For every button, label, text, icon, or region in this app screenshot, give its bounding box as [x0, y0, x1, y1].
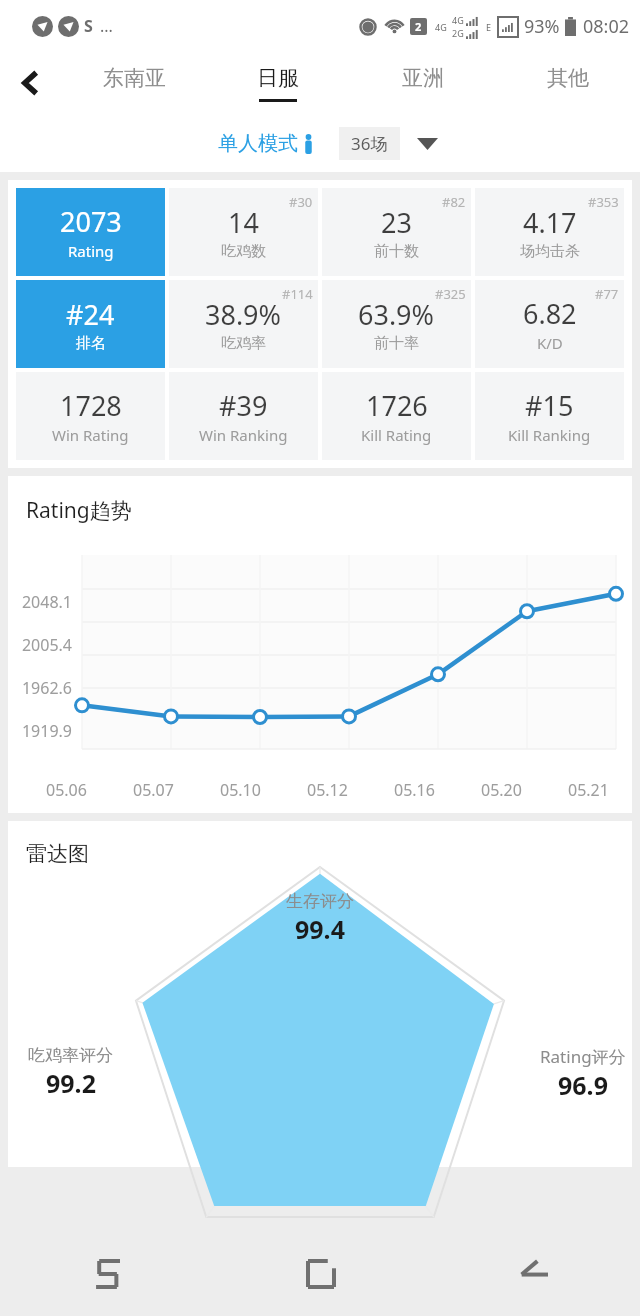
staticText: 93%	[524, 14, 560, 39]
staticText: Kill Ranking	[508, 425, 591, 445]
staticText: 单人模式	[218, 131, 298, 156]
staticText: 99.4	[295, 912, 345, 946]
button[interactable]: #24	[16, 280, 165, 368]
staticText: 2005.4	[8, 634, 72, 656]
staticText: 东南亚	[103, 65, 166, 91]
staticText: 05.16	[394, 779, 435, 801]
staticText: 1728	[60, 387, 122, 424]
staticText: #24	[66, 296, 115, 333]
staticText: 亚洲	[402, 65, 444, 91]
staticText: #39	[219, 387, 268, 424]
staticText: 前十率	[374, 334, 419, 353]
staticText: S	[84, 15, 93, 37]
staticText: Win Ranking	[199, 425, 288, 445]
staticText: 05.10	[220, 779, 261, 801]
button[interactable]: Home	[214, 1232, 427, 1316]
staticText: 05.21	[568, 779, 609, 801]
button[interactable]: #82	[322, 188, 471, 276]
staticText: 14	[228, 204, 259, 241]
staticText: E	[486, 21, 492, 33]
button[interactable]: #39	[169, 372, 318, 460]
button[interactable]: 1726	[322, 372, 471, 460]
staticText: 99.2	[46, 1066, 96, 1100]
button[interactable]: 单人模式	[218, 131, 313, 156]
staticText: Rating评分	[540, 1045, 626, 1068]
staticText: 2G	[452, 27, 464, 39]
staticText: Rating趋势	[26, 496, 132, 525]
button[interactable]: Recents	[0, 1232, 214, 1316]
button[interactable]: #77	[475, 280, 624, 368]
staticText: 23	[381, 204, 412, 241]
staticText: 场均击杀	[520, 242, 580, 261]
staticText: 05.20	[481, 779, 522, 801]
staticText: 08:02	[583, 14, 630, 39]
staticText: 4G	[435, 21, 447, 33]
staticText: 其他	[547, 65, 589, 91]
button[interactable]: 1728	[16, 372, 165, 460]
staticText: 2048.1	[8, 591, 72, 613]
staticText: 38.9%	[205, 296, 282, 333]
staticText: 2073	[60, 203, 122, 240]
staticText: 生存评分	[286, 891, 354, 912]
staticText: 1919.9	[8, 720, 72, 742]
button[interactable]: #114	[169, 280, 318, 368]
staticText: 05.12	[307, 779, 348, 801]
button[interactable]: 2073	[16, 188, 165, 276]
button[interactable]: 亚洲	[350, 52, 495, 114]
staticText: #77	[595, 285, 619, 303]
staticText: Win Rating	[52, 425, 129, 445]
staticText: ...	[100, 15, 113, 37]
staticText: 4.17	[523, 204, 577, 241]
staticText: #325	[435, 285, 466, 303]
button[interactable]: Back	[427, 1232, 640, 1316]
staticText: 05.07	[133, 779, 174, 801]
staticText: Rating	[68, 241, 114, 261]
staticText: 4G	[452, 14, 464, 26]
button[interactable]: #325	[322, 280, 471, 368]
button[interactable]: 日服	[206, 52, 350, 114]
staticText: #114	[282, 285, 313, 303]
staticText: 2	[415, 19, 422, 34]
staticText: 日服	[257, 65, 299, 91]
button[interactable]: #15	[475, 372, 624, 460]
staticText: #30	[289, 193, 313, 211]
button[interactable]: 东南亚	[62, 52, 206, 114]
staticText: #82	[442, 193, 466, 211]
staticText: 1726	[366, 387, 428, 424]
staticText: 96.9	[558, 1068, 608, 1102]
button[interactable]: #30	[169, 188, 318, 276]
button[interactable]: #353	[475, 188, 624, 276]
staticText: K/D	[537, 333, 563, 353]
staticText: 吃鸡率评分	[28, 1045, 113, 1066]
staticText: 前十数	[374, 242, 419, 261]
button[interactable]: 36场	[339, 127, 438, 160]
staticText: 吃鸡数	[221, 242, 266, 261]
staticText: Kill Rating	[361, 425, 432, 445]
staticText: 排名	[76, 334, 106, 353]
staticText: 吃鸡率	[221, 334, 266, 353]
staticText: 6.82	[523, 295, 577, 332]
staticText: #353	[588, 193, 619, 211]
staticText: 05.06	[46, 779, 87, 801]
staticText: 36场	[351, 132, 388, 155]
button[interactable]: 其他	[495, 52, 640, 114]
staticText: 63.9%	[358, 296, 435, 333]
staticText: 1962.6	[8, 677, 72, 699]
button[interactable]: Back	[0, 52, 62, 114]
staticText: 雷达图	[26, 841, 89, 867]
staticText: #15	[525, 387, 574, 424]
